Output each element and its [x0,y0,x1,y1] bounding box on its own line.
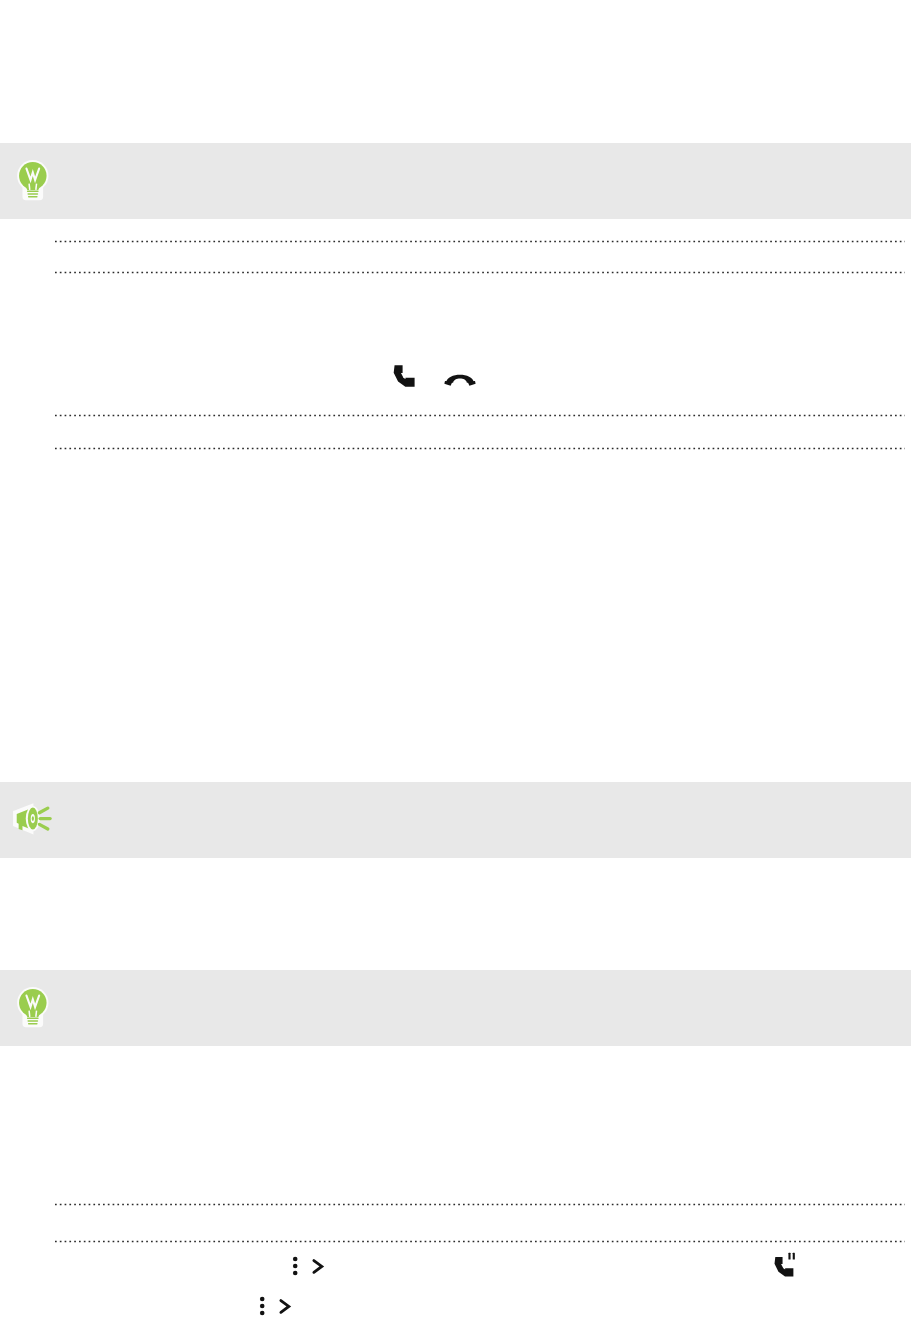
button[interactable]: Hold call [771,1251,801,1281]
button[interactable]: Call [390,361,420,391]
button[interactable]: Important note [0,782,911,858]
button[interactable]: Tip [0,143,911,219]
button[interactable]: Tip [0,970,911,1046]
button[interactable]: More options [286,1253,306,1279]
button[interactable]: More options [253,1293,273,1318]
button[interactable]: End call [443,365,477,389]
